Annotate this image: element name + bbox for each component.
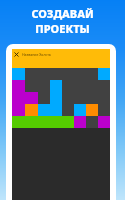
staticText: Название Холста [22, 52, 51, 57]
staticText: СОЗДАВАЙ [31, 6, 94, 21]
staticText: ПРОЕКТЫ [35, 21, 90, 36]
